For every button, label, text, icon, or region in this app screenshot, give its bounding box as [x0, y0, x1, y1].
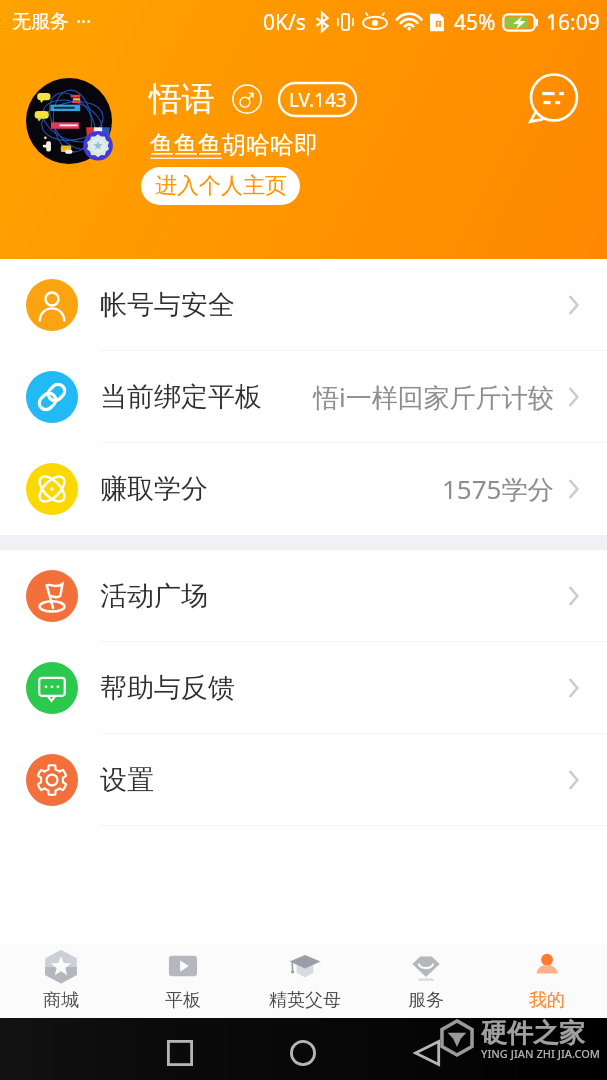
button[interactable]: 进入个人主页: [141, 167, 300, 205]
staticText: 当前绑定平板: [100, 380, 262, 414]
staticText: 硬件之家: [481, 1017, 585, 1050]
button[interactable]: Messages: [524, 72, 580, 128]
button[interactable]: 活动广场: [0, 550, 607, 641]
button[interactable]: 商城: [0, 944, 122, 1018]
staticText: 赚取学分: [100, 472, 208, 506]
button[interactable]: 赚取学分: [0, 443, 607, 534]
staticText: 1575学分: [442, 471, 554, 507]
button[interactable]: 帐号与安全: [0, 259, 607, 350]
staticText: 悟i一样回家斤斤计较: [313, 379, 554, 415]
staticText: 16:09: [546, 8, 600, 37]
staticText: 平板: [165, 989, 201, 1012]
button[interactable]: 设置: [0, 734, 607, 825]
staticText: 0K/s: [263, 8, 306, 37]
staticText: 进入个人主页: [155, 172, 287, 200]
staticText: 服务: [408, 989, 444, 1012]
staticText: YING JIAN ZHI JIA.COM: [481, 1046, 600, 1061]
button[interactable]: 平板: [122, 944, 244, 1018]
button[interactable]: 我的: [486, 944, 607, 1018]
staticText: 45%: [454, 8, 496, 37]
button[interactable]: Avatar: [26, 78, 112, 164]
button[interactable]: 精英父母: [244, 944, 365, 1018]
button[interactable]: Back: [414, 1040, 440, 1066]
staticText: 无服务: [12, 10, 69, 34]
button[interactable]: 帮助与反馈: [0, 642, 607, 733]
staticText: 商城: [43, 989, 79, 1012]
button[interactable]: Recents: [167, 1040, 193, 1066]
button[interactable]: 当前绑定平板: [0, 351, 607, 442]
button[interactable]: 服务: [365, 944, 486, 1018]
staticText: 精英父母: [269, 989, 341, 1012]
staticText: ···: [76, 9, 92, 35]
staticText: LV.143: [289, 87, 347, 113]
staticText: 我的: [529, 989, 565, 1012]
staticText: 悟语: [149, 78, 215, 120]
staticText: 胡哈哈即: [222, 130, 318, 160]
staticText: 鱼鱼鱼: [150, 130, 222, 160]
staticText: 活动广场: [100, 579, 208, 613]
staticText: 帮助与反馈: [100, 671, 235, 705]
staticText: 设置: [100, 763, 154, 797]
button[interactable]: Home: [290, 1040, 316, 1066]
staticText: 帐号与安全: [100, 288, 235, 322]
